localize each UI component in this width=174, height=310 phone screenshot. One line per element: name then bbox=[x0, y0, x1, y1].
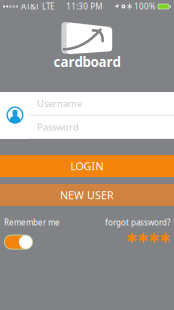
staticText: ✱✱✱✱ bbox=[126, 231, 170, 246]
staticText: forgot password? bbox=[105, 217, 170, 228]
staticText: Remember me bbox=[4, 217, 60, 228]
staticText: cardboard bbox=[53, 53, 120, 71]
staticText: AT&T bbox=[21, 1, 39, 12]
staticText: Password bbox=[37, 121, 79, 133]
button[interactable]: LOGIN bbox=[0, 155, 174, 177]
button[interactable]: Username bbox=[28, 92, 174, 115]
button[interactable]: forgot password? bbox=[105, 217, 170, 228]
staticText: 100% bbox=[134, 1, 156, 12]
staticText: 11:30 PM bbox=[66, 1, 102, 12]
button[interactable]: NEW USER bbox=[0, 184, 174, 206]
button[interactable]: Remember me bbox=[4, 235, 33, 250]
staticText: LTE bbox=[42, 1, 54, 12]
staticText: Username bbox=[37, 97, 82, 110]
button[interactable]: Password bbox=[28, 115, 174, 139]
staticText: LOGIN bbox=[70, 159, 103, 173]
staticText: NEW USER bbox=[60, 188, 114, 202]
